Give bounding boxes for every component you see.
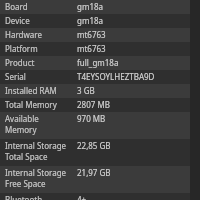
button[interactable]: Platform xyxy=(0,42,200,56)
button[interactable]: Device xyxy=(0,14,200,28)
staticText: 22,85 GB xyxy=(77,140,111,151)
button[interactable]: Installed RAM xyxy=(0,84,200,98)
staticText: Total Memory xyxy=(5,99,77,110)
staticText: mt6763 xyxy=(77,29,106,40)
staticText: full_gm18a xyxy=(77,57,119,68)
staticText: 3 GB xyxy=(77,85,95,96)
staticText: 2807 MB xyxy=(77,99,110,110)
staticText: Internal Storage Free Space xyxy=(5,167,77,189)
staticText: Serial xyxy=(5,71,77,82)
button[interactable]: Total Memory xyxy=(0,98,200,112)
button[interactable]: Bluetooth Version xyxy=(0,193,200,200)
button[interactable]: Internal Storage Free Space xyxy=(0,166,200,193)
staticText: Device xyxy=(5,15,77,26)
staticText: 970 MB xyxy=(77,113,106,124)
staticText: Internal Storage Total Space xyxy=(5,140,77,162)
staticText: Available Memory xyxy=(5,113,77,135)
button[interactable]: Board xyxy=(0,0,200,14)
staticText: gm18a xyxy=(77,1,104,12)
staticText: T4EYSOYLHEZTBA9D xyxy=(77,71,155,82)
button[interactable]: Available Memory xyxy=(0,112,200,139)
staticText: Product xyxy=(5,57,77,68)
staticText: mt6763 xyxy=(77,43,106,54)
staticText: Installed RAM xyxy=(5,85,77,96)
button[interactable]: Internal Storage Total Space xyxy=(0,139,200,166)
staticText: 21,97 GB xyxy=(77,167,111,178)
staticText: gm18a xyxy=(77,15,104,26)
staticText: Hardware xyxy=(5,29,77,40)
button[interactable]: Hardware xyxy=(0,28,200,42)
staticText: Board xyxy=(5,1,77,12)
staticText: Platform xyxy=(5,43,77,54)
staticText: Bluetooth Version xyxy=(5,194,77,200)
staticText: 4+ xyxy=(77,194,87,200)
button[interactable]: Serial xyxy=(0,70,200,84)
button[interactable]: Product xyxy=(0,56,200,70)
